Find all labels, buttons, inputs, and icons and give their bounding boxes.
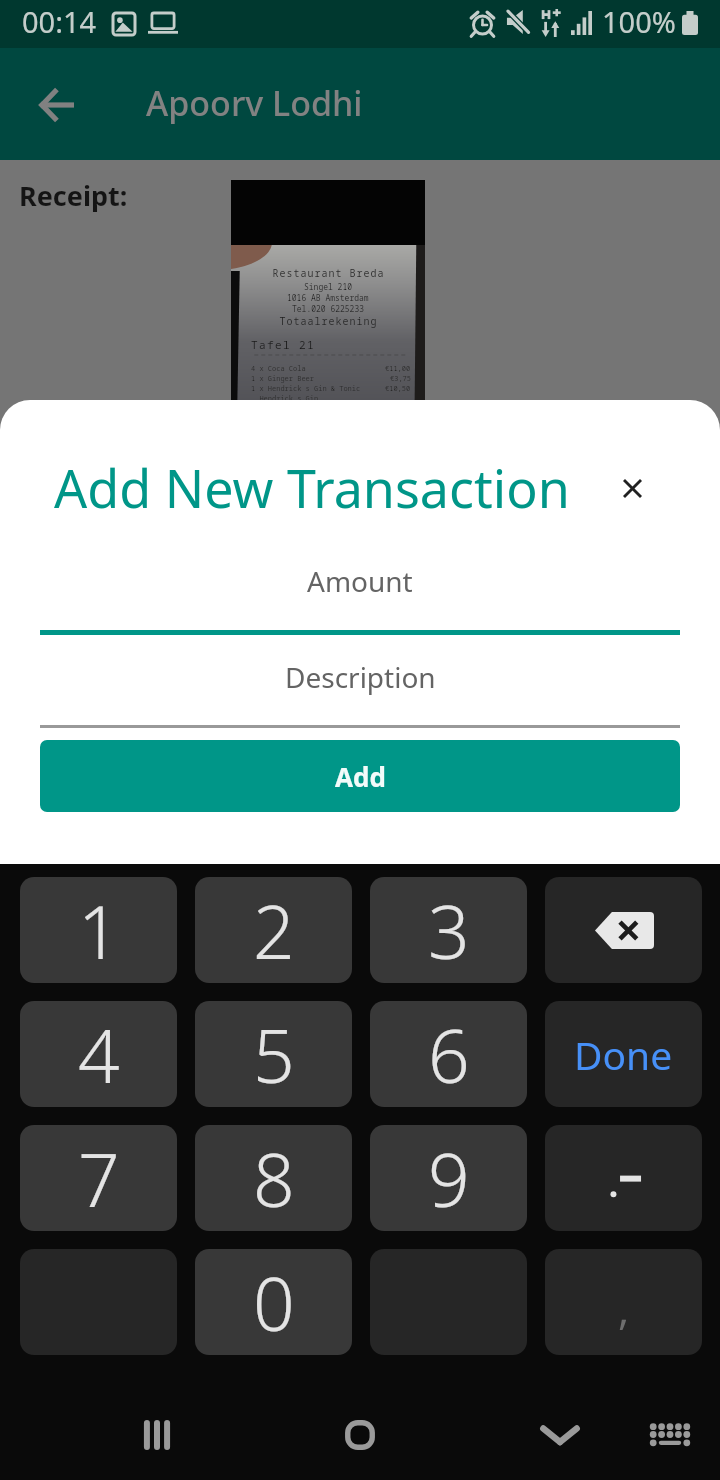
staticText: Tafel 21 <box>251 337 315 352</box>
button[interactable]: Close <box>604 460 660 516</box>
staticText: Done <box>574 1028 673 1081</box>
staticText: 5 <box>253 1005 295 1104</box>
staticText: 8 <box>253 1129 295 1228</box>
staticText: €10,50 <box>385 384 411 394</box>
button[interactable]: Change keyboard <box>625 1400 715 1470</box>
button[interactable]: Home <box>315 1400 405 1470</box>
staticText: Receipt: <box>19 177 128 214</box>
button[interactable]: Comma <box>545 1249 702 1355</box>
staticText: Singel 210 <box>304 281 352 292</box>
button[interactable]: 7 <box>20 1125 177 1231</box>
staticText: 2 <box>253 881 295 980</box>
staticText: 1 x Hendrick s Gin & Tonic <box>251 384 361 394</box>
staticText: Tel.020 6225233 <box>292 303 364 314</box>
button[interactable]: Back <box>26 73 90 137</box>
staticText: Add <box>335 759 386 794</box>
staticText: 100% <box>602 2 676 41</box>
staticText: Add New Transaction <box>54 452 570 523</box>
button[interactable]: 4 <box>20 1001 177 1107</box>
button[interactable]: Amount <box>40 542 680 620</box>
staticText: Hendrick s Gin <box>251 394 319 404</box>
button[interactable]: Recent apps <box>112 1400 202 1470</box>
staticText: 9 <box>428 1129 470 1228</box>
button[interactable]: Add <box>40 740 680 812</box>
button[interactable]: 2 <box>195 877 352 983</box>
button[interactable]: Backspace <box>545 877 702 983</box>
staticText: 7 <box>78 1129 120 1228</box>
staticText: , <box>618 1280 630 1337</box>
staticText: 1 <box>78 881 120 980</box>
button[interactable]: 1 <box>20 877 177 983</box>
staticText: Description <box>285 658 436 696</box>
button[interactable]: 6 <box>370 1001 527 1107</box>
button[interactable]: Description <box>40 638 680 716</box>
staticText: 00:14 <box>22 2 97 41</box>
staticText: Amount <box>307 562 413 600</box>
button[interactable]: Done <box>545 1001 702 1107</box>
button[interactable]: Decimal separator <box>545 1125 702 1231</box>
staticText: 3 <box>428 881 470 980</box>
staticText: €11,00 <box>385 364 411 374</box>
staticText: 6 <box>428 1005 470 1104</box>
staticText: 4 x Coca Cola <box>251 364 306 374</box>
staticText: 1016 AB Amsterdam <box>287 292 369 303</box>
staticText: 0 <box>253 1253 295 1352</box>
staticText: 1 x Ginger Beer <box>251 374 314 384</box>
staticText: Apoorv Lodhi <box>146 80 363 126</box>
staticText: €3,75 <box>390 374 411 384</box>
staticText: Restaurant Breda <box>272 266 384 280</box>
staticText: Totaalrekening <box>279 314 377 328</box>
button[interactable]: 9 <box>370 1125 527 1231</box>
button[interactable]: 5 <box>195 1001 352 1107</box>
button[interactable]: 0 <box>195 1249 352 1355</box>
button[interactable]: 3 <box>370 877 527 983</box>
button[interactable]: Hide keyboard <box>515 1400 605 1470</box>
staticText: 4 <box>78 1005 120 1104</box>
button[interactable]: 8 <box>195 1125 352 1231</box>
